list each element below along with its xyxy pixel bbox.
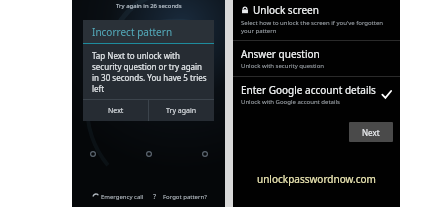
staticText: Incorrect pattern xyxy=(92,25,173,39)
button[interactable]: Next xyxy=(349,122,393,142)
staticText: unlockpasswordnow.com xyxy=(257,172,376,186)
other: Emergency call xyxy=(93,194,99,200)
staticText: Enter Google account details xyxy=(241,83,376,97)
button[interactable]: Try again xyxy=(149,100,214,121)
staticText: Next xyxy=(108,106,124,116)
staticText: Answer question xyxy=(241,47,320,61)
button[interactable]: Forgot pattern? xyxy=(163,193,207,201)
staticText: Try again xyxy=(166,106,197,116)
staticText: Unlock with Google account details xyxy=(241,98,340,106)
staticText: Select how to unlock the screen if you'v… xyxy=(241,19,394,35)
button[interactable]: Enter Google account details xyxy=(233,77,400,112)
other: Selected xyxy=(381,89,392,100)
other: Lock xyxy=(241,6,249,14)
staticText: Unlock with security question xyxy=(241,62,324,70)
button[interactable]: Emergency call xyxy=(90,193,147,201)
staticText: Tap Next to unlock with security questio… xyxy=(92,50,207,94)
staticText: Try again in 26 seconds xyxy=(116,2,182,10)
button[interactable]: Answer question xyxy=(233,41,400,76)
staticText: Unlock screen xyxy=(253,3,319,17)
staticText: ? xyxy=(153,192,157,202)
staticText: Next xyxy=(362,127,380,138)
button[interactable]: Next xyxy=(83,100,148,121)
staticText: Emergency call xyxy=(101,193,144,201)
